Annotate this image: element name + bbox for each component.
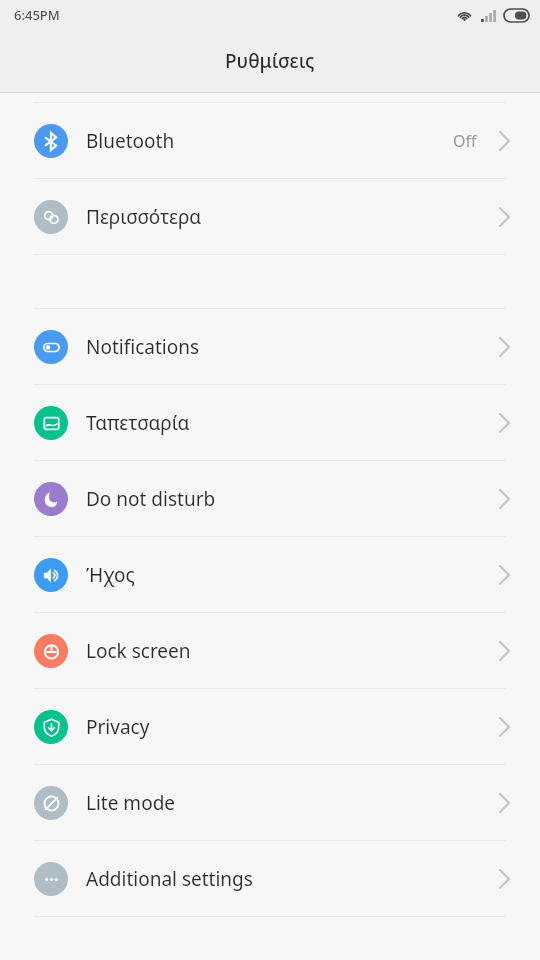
staticText: Ταπετσαρία <box>86 410 499 436</box>
other: Open Ήχος <box>499 566 510 584</box>
button[interactable]: Privacy <box>0 689 540 764</box>
other: Open Bluetooth <box>499 132 510 150</box>
staticText: Ρυθμίσεις <box>225 48 315 74</box>
staticText: Ήχος <box>86 562 499 588</box>
staticText: Do not disturb <box>86 486 499 512</box>
button[interactable]: Ήχος <box>0 537 540 612</box>
button[interactable]: Lock screen <box>0 613 540 688</box>
other: Open Lite mode <box>499 794 510 812</box>
button[interactable]: Notifications <box>0 309 540 384</box>
button[interactable]: Lite mode <box>0 765 540 840</box>
other: Open Additional settings <box>499 870 510 888</box>
button[interactable]: Bluetooth <box>0 103 540 178</box>
staticText: Notifications <box>86 334 499 360</box>
staticText: 6:45PM <box>14 6 60 24</box>
staticText: Lite mode <box>86 790 499 816</box>
staticText: Περισσότερα <box>86 204 499 230</box>
other: Open Do not disturb <box>499 490 510 508</box>
other: Open Privacy <box>499 718 510 736</box>
button[interactable]: Περισσότερα <box>0 179 540 254</box>
staticText: Off <box>453 130 477 152</box>
button[interactable]: Do not disturb <box>0 461 540 536</box>
other: Open Notifications <box>499 338 510 356</box>
staticText: Additional settings <box>86 866 499 892</box>
button[interactable]: Ταπετσαρία <box>0 385 540 460</box>
button[interactable]: Additional settings <box>0 841 540 916</box>
staticText: Privacy <box>86 714 499 740</box>
other: Open Lock screen <box>499 642 510 660</box>
staticText: Bluetooth <box>86 128 453 154</box>
other: Open Ταπετσαρία <box>499 414 510 432</box>
staticText: Lock screen <box>86 638 499 664</box>
other: Open Περισσότερα <box>499 208 510 226</box>
